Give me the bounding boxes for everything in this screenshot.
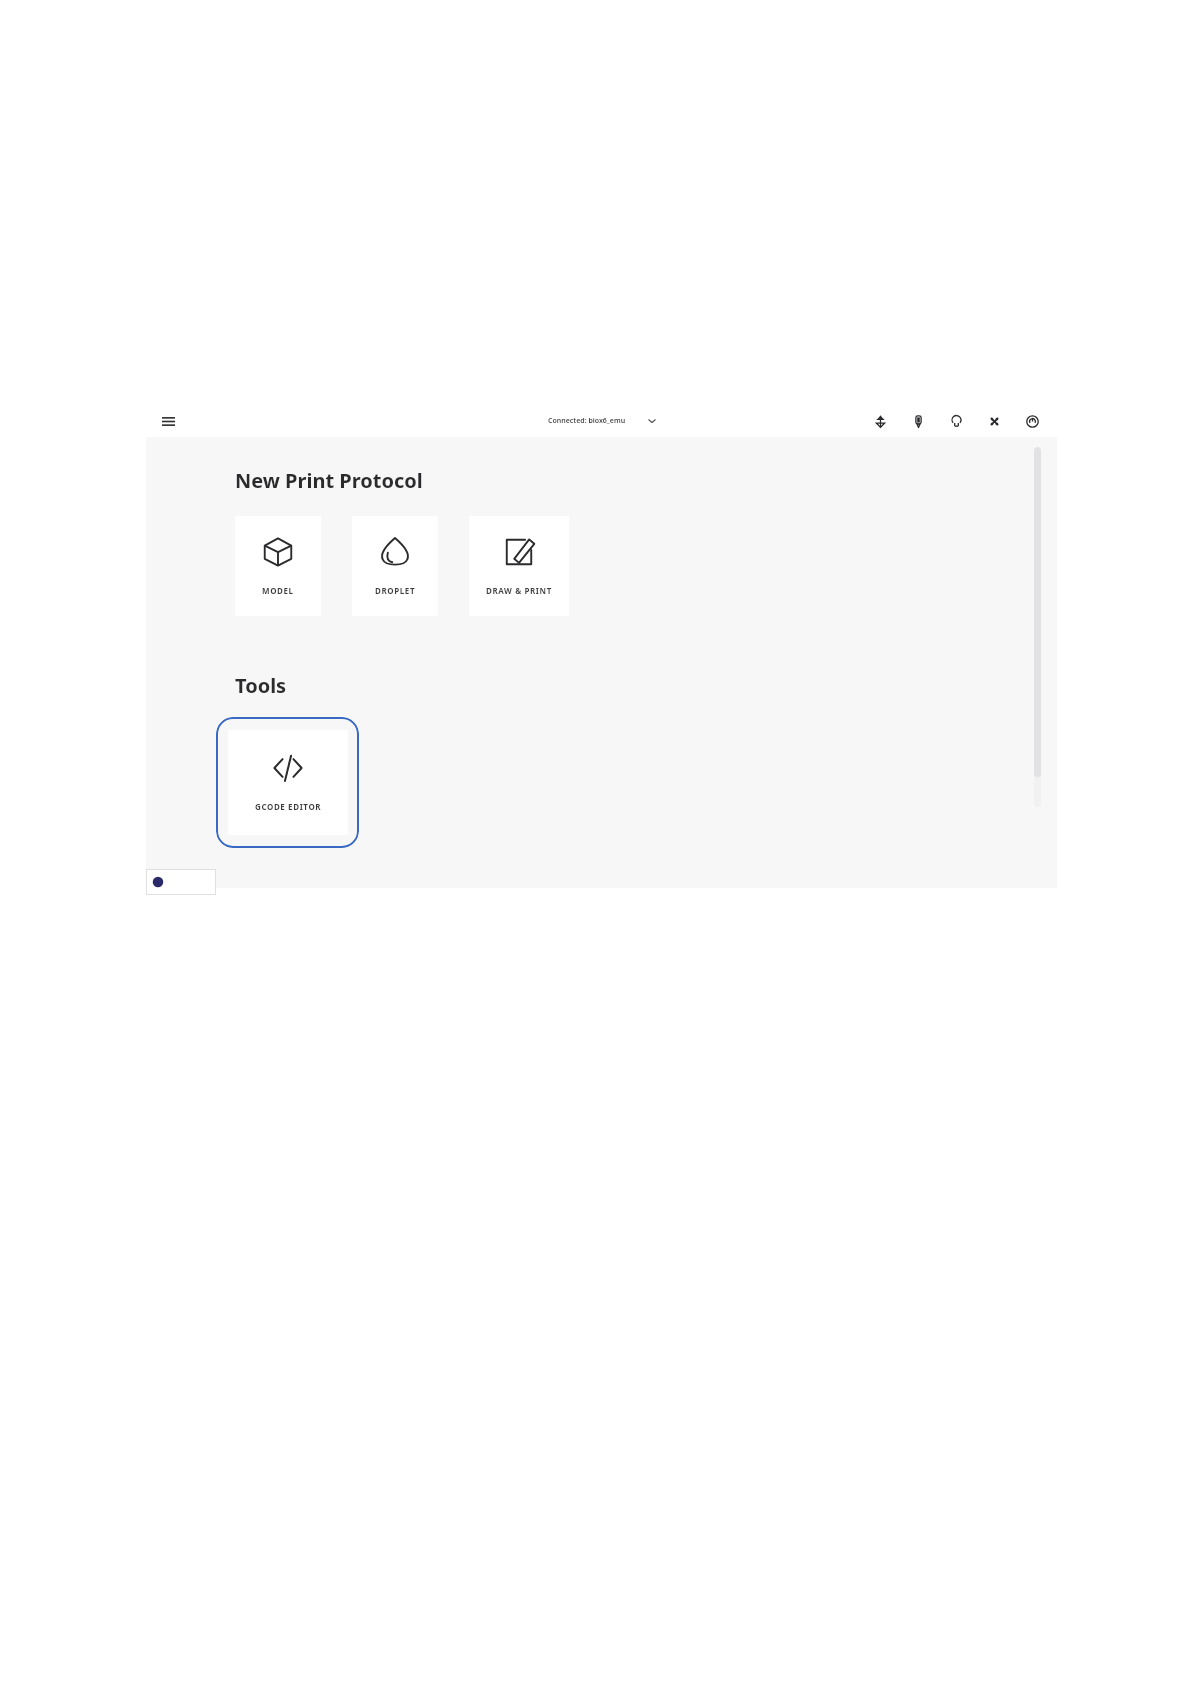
button[interactable]: Fan [983,410,1005,432]
button[interactable] [146,869,216,895]
staticText: DROPLET [375,585,416,596]
button[interactable]: DROPLET [352,516,438,616]
staticText: GCODE EDITOR [255,801,322,812]
staticText: Connected: biox6_emu [548,416,626,426]
staticText: New Print Protocol [235,467,423,494]
button[interactable]: DRAW & PRINT [469,516,569,616]
staticText: DRAW & PRINT [486,585,552,596]
button[interactable]: Power [1021,410,1043,432]
button[interactable]: Light [945,410,967,432]
button[interactable]: Menu [154,407,182,435]
staticText: MODEL [262,585,294,596]
staticText: Tools [235,672,287,699]
button[interactable]: MODEL [235,516,321,616]
button[interactable]: GCODE EDITOR [228,730,348,835]
button[interactable]: Printhead [907,410,929,432]
button[interactable]: Connected: biox6_emu [542,413,662,429]
button[interactable]: Calibrate [869,410,891,432]
button[interactable]: GCODE EDITOR [216,717,359,848]
